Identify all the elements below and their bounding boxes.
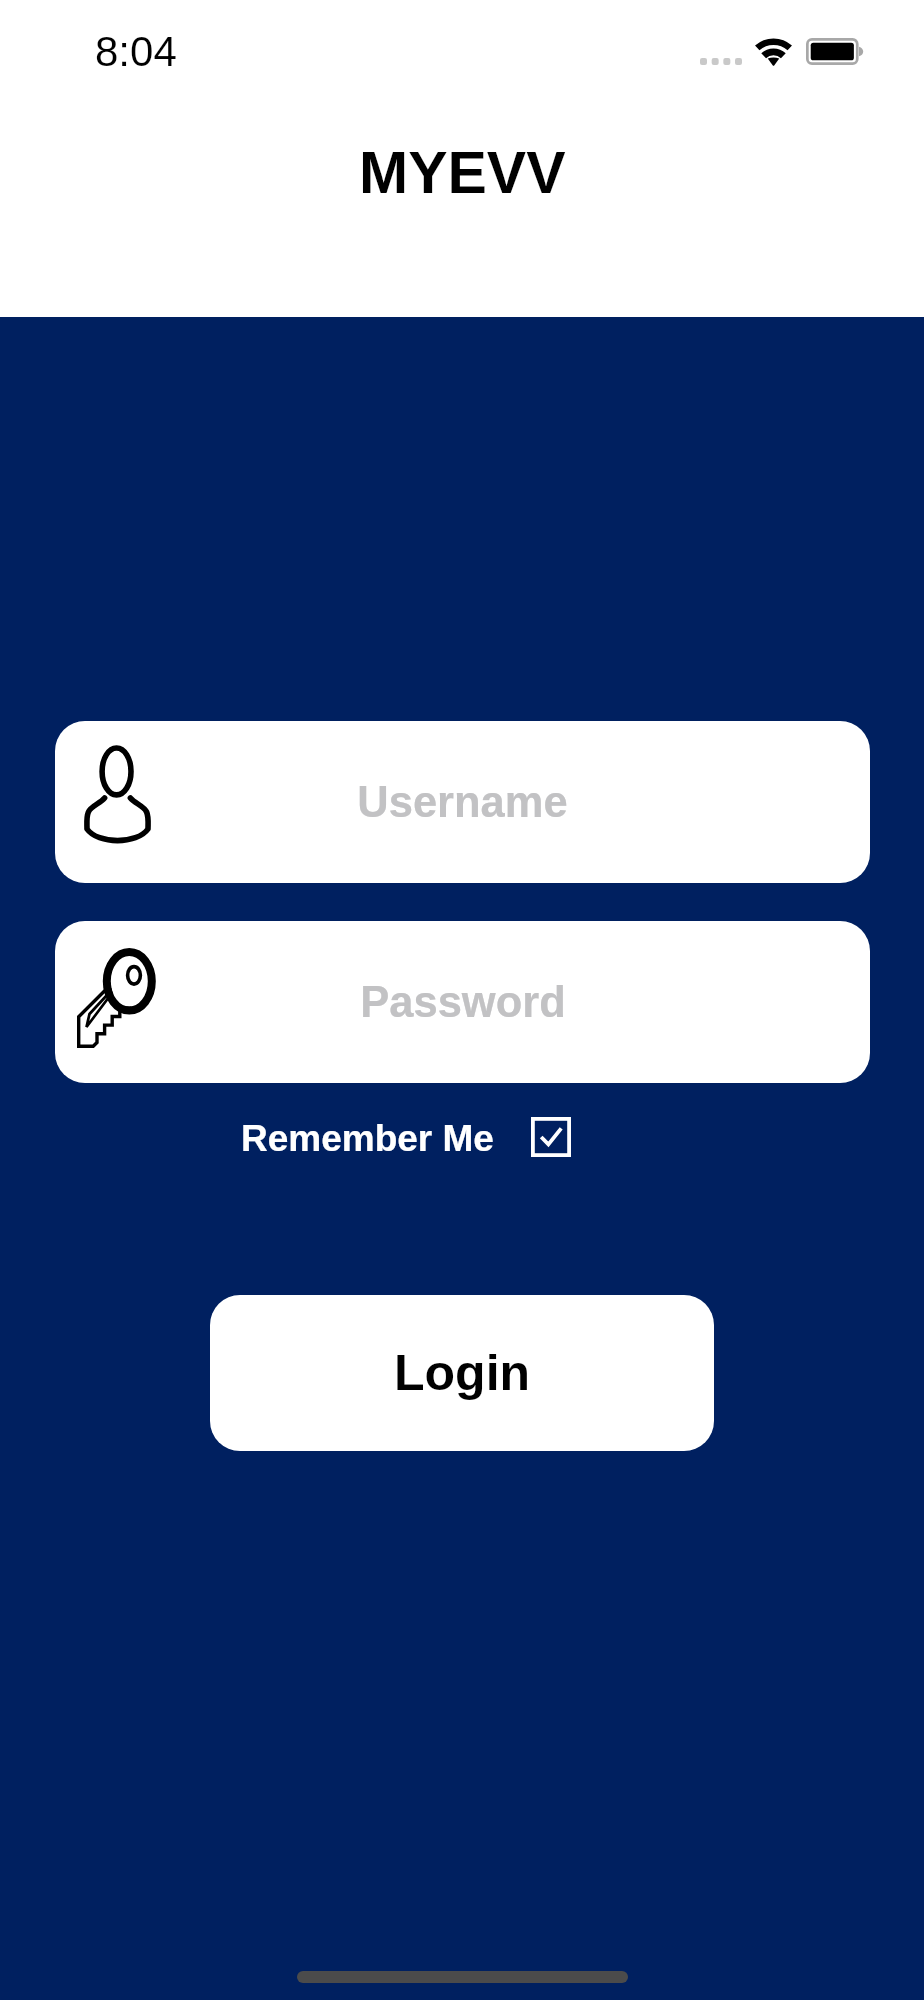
button[interactable]: Remember Me <box>235 1110 577 1163</box>
button[interactable]: Username field <box>55 721 870 883</box>
staticText: Password <box>360 978 566 1027</box>
staticText: 8:04 <box>95 28 177 75</box>
staticText: Username <box>357 778 568 827</box>
button[interactable]: Login <box>210 1295 714 1451</box>
staticText: Remember Me <box>241 1118 494 1159</box>
button[interactable]: Password field <box>55 921 870 1083</box>
other: Remember me checkbox <box>531 1117 571 1157</box>
staticText: MYEVV <box>359 140 566 206</box>
staticText: Login <box>394 1345 531 1401</box>
